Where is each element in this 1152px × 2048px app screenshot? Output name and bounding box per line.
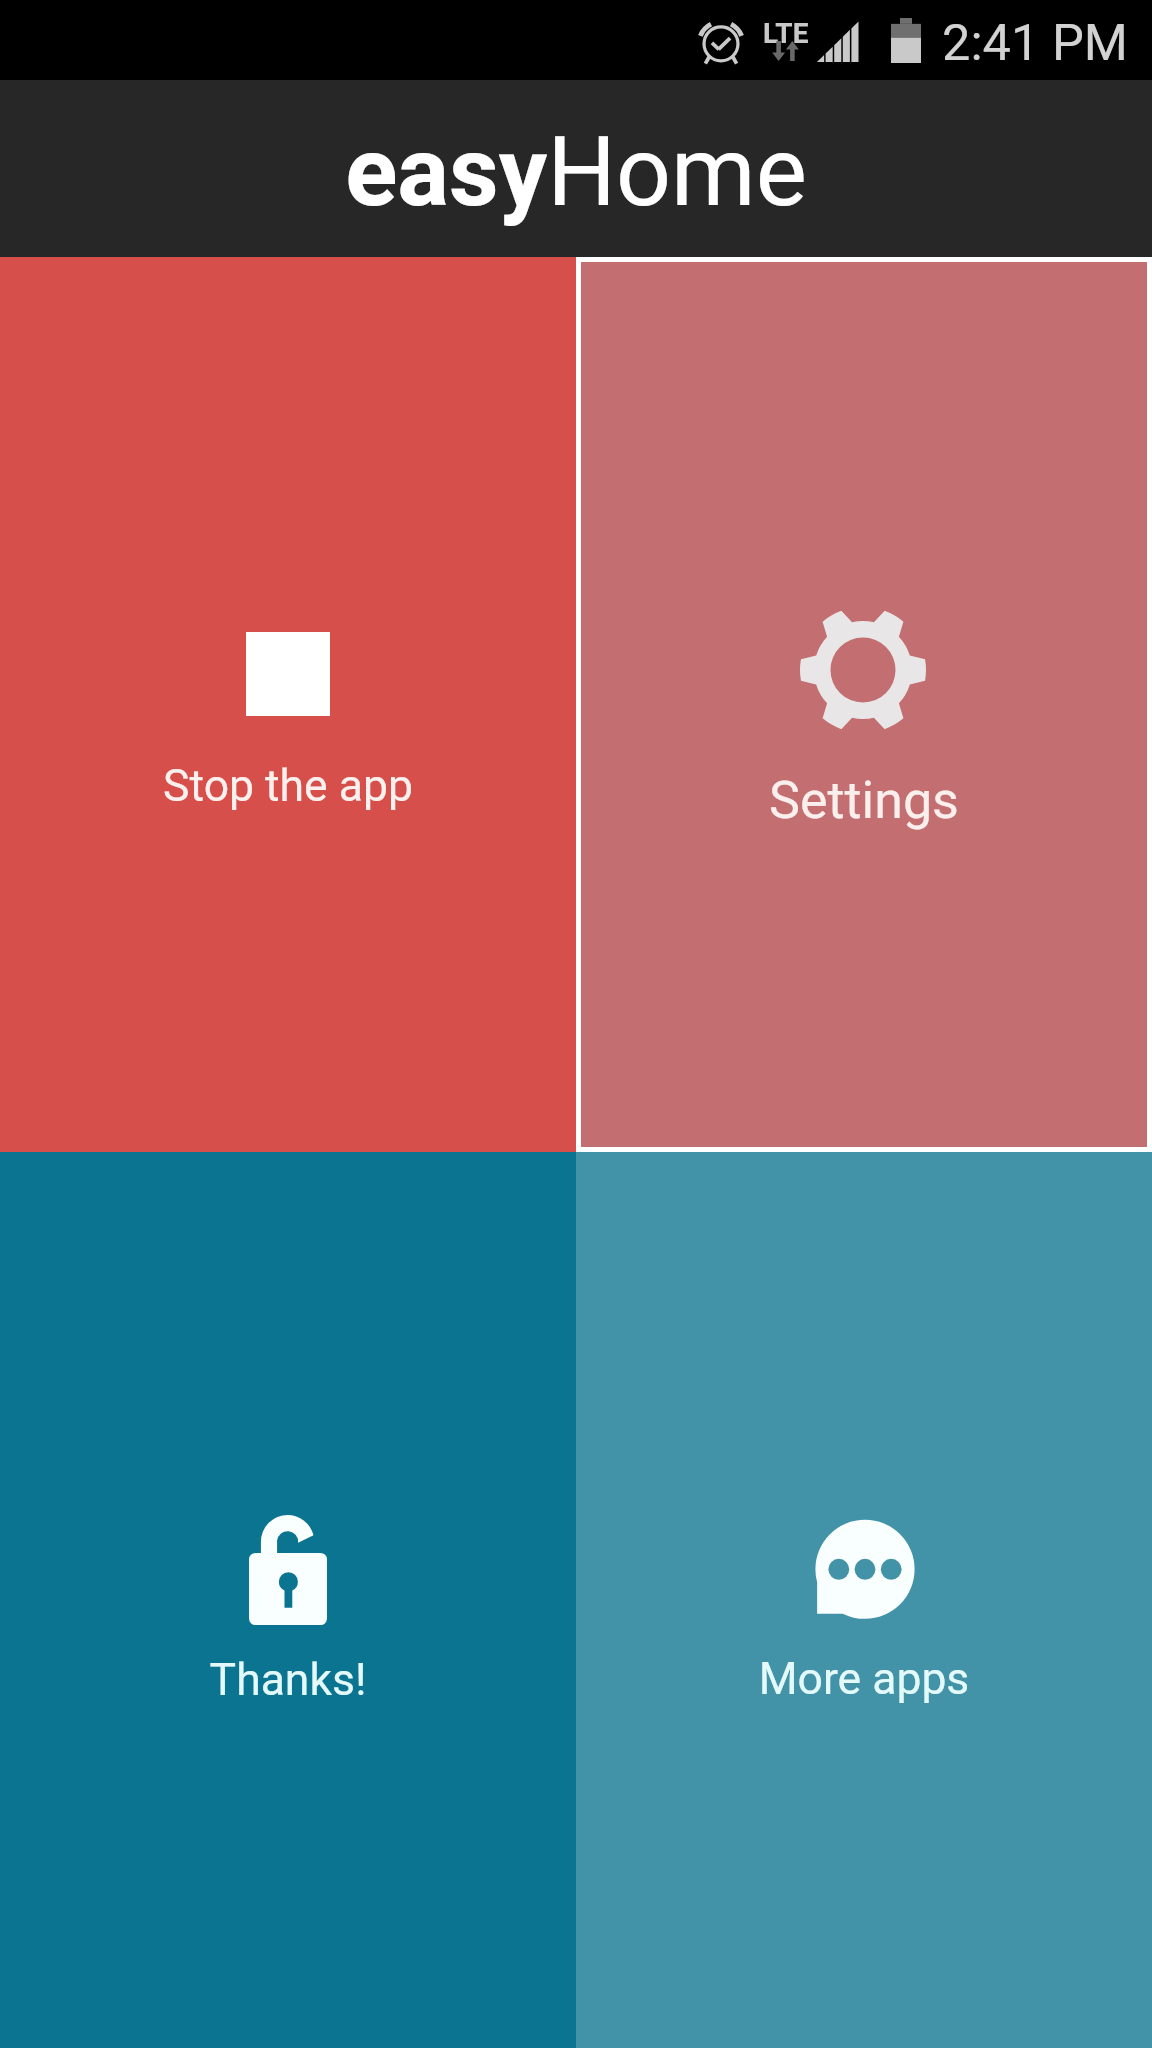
button[interactable]: Settings	[581, 262, 1147, 1147]
staticText: More apps	[576, 1653, 1152, 1705]
staticText: Stop the app	[0, 760, 576, 812]
staticText: Settings	[581, 770, 1147, 831]
staticText: 2:41 PM	[942, 13, 1128, 72]
button[interactable]: Stop the app	[0, 257, 576, 1152]
other: Alarm set	[702, 19, 740, 62]
button[interactable]: More apps	[576, 1152, 1152, 2048]
staticText: LTE	[763, 17, 809, 50]
other: Battery	[891, 18, 921, 63]
button[interactable]: Thanks!	[0, 1152, 576, 2048]
staticText: easyHome	[345, 115, 807, 228]
staticText: Thanks!	[0, 1654, 576, 1706]
other: Signal strength	[817, 20, 860, 62]
